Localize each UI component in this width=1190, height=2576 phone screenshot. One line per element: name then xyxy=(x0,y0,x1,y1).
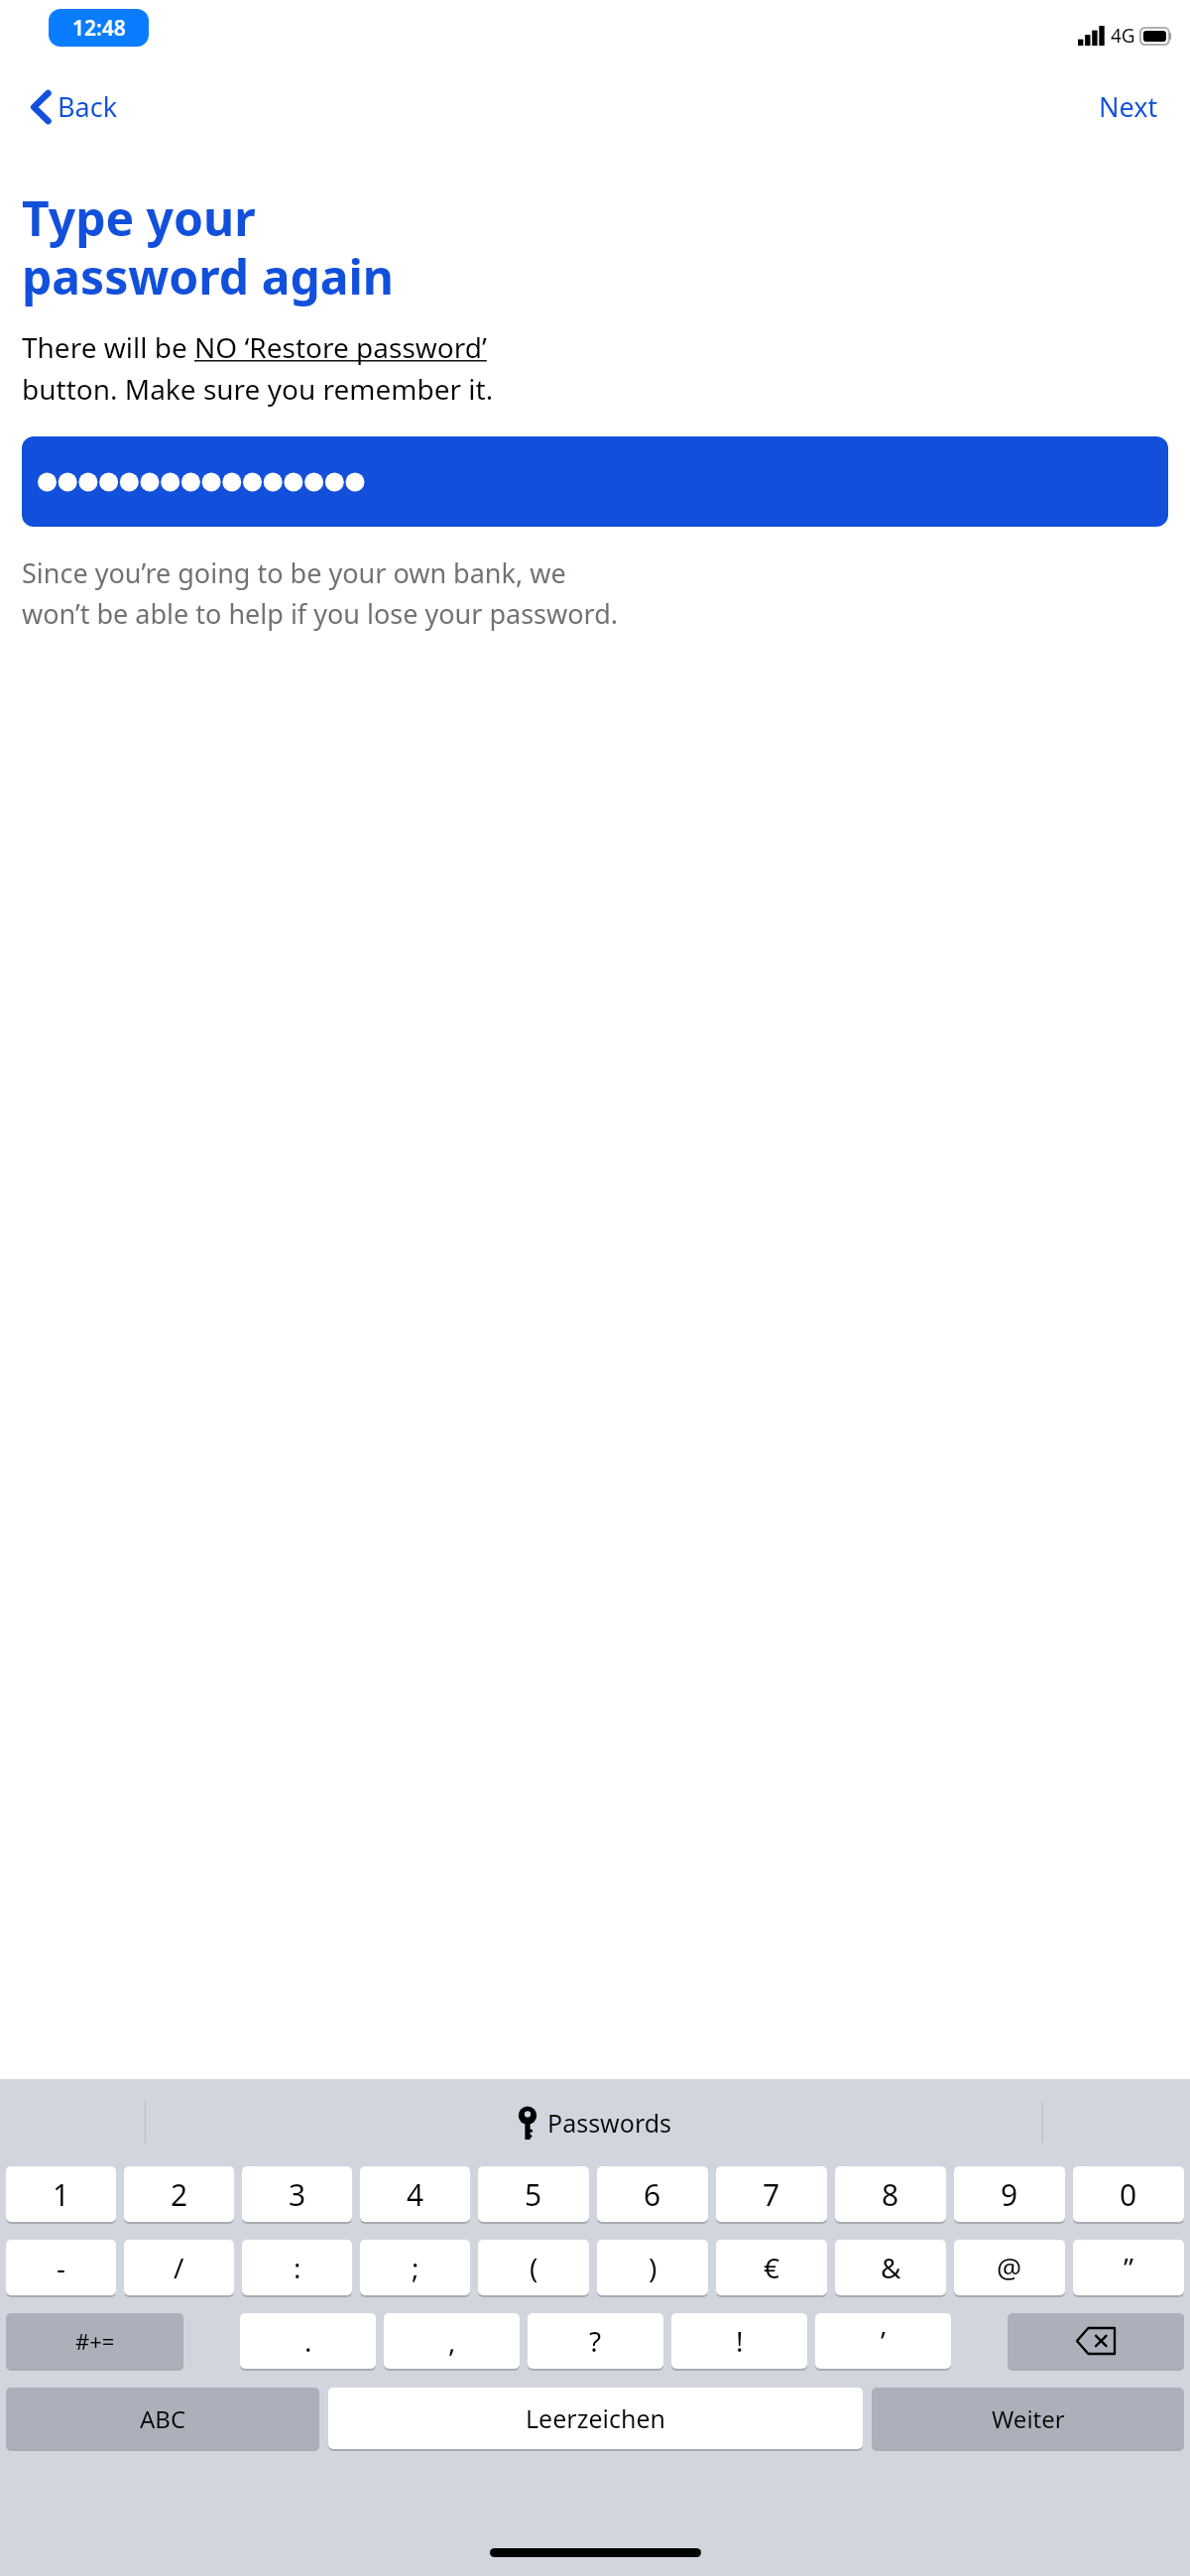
button[interactable]: @ xyxy=(954,2240,1065,2295)
button[interactable]: 4 xyxy=(360,2166,470,2222)
staticText: ” xyxy=(1124,2249,1134,2286)
button[interactable]: 6 xyxy=(597,2166,708,2222)
button[interactable]: ! xyxy=(671,2313,807,2369)
button[interactable]: 7 xyxy=(716,2166,827,2222)
button[interactable]: ; xyxy=(360,2240,470,2295)
staticText: 12:48 xyxy=(72,14,126,43)
staticText: ) xyxy=(649,2249,657,2286)
staticText: - xyxy=(57,2249,66,2286)
staticText: ( xyxy=(530,2249,538,2286)
button[interactable]: Next xyxy=(1091,82,1166,131)
button[interactable]: ABC xyxy=(6,2388,319,2449)
button[interactable]: 3 xyxy=(242,2166,352,2222)
button[interactable]: - xyxy=(6,2240,116,2295)
staticText: ’ xyxy=(881,2322,886,2360)
staticText: € xyxy=(764,2249,780,2286)
button[interactable]: 9 xyxy=(954,2166,1065,2222)
button[interactable]: Passwords xyxy=(518,2106,672,2140)
other: Backspace xyxy=(1008,2313,1184,2370)
button[interactable]: Weiter xyxy=(872,2388,1184,2449)
staticText: Next xyxy=(1099,88,1158,125)
button[interactable]: Leerzeichen xyxy=(328,2388,863,2449)
staticText: & xyxy=(881,2249,901,2286)
staticText: ? xyxy=(589,2322,602,2360)
staticText: Type your password again xyxy=(22,185,395,308)
button[interactable]: 2 xyxy=(124,2166,234,2222)
button[interactable]: ? xyxy=(528,2313,663,2369)
button[interactable] xyxy=(22,436,1168,527)
staticText: 2 xyxy=(171,2174,188,2215)
button[interactable]: ( xyxy=(478,2240,589,2295)
staticText: Passwords xyxy=(547,2106,672,2140)
staticText: @ xyxy=(997,2249,1022,2286)
button[interactable] xyxy=(1008,2313,1184,2369)
staticText: . xyxy=(304,2322,312,2360)
staticText: 0 xyxy=(1120,2174,1137,2215)
staticText: 7 xyxy=(763,2174,780,2215)
staticText: Since you’re going to be your own bank, … xyxy=(22,554,619,632)
button[interactable]: / xyxy=(124,2240,234,2295)
staticText: 6 xyxy=(644,2174,661,2215)
button[interactable]: ” xyxy=(1073,2240,1184,2295)
staticText: / xyxy=(174,2249,184,2286)
staticText: Weiter xyxy=(992,2402,1065,2435)
staticText: 8 xyxy=(882,2174,899,2215)
button[interactable]: 8 xyxy=(835,2166,946,2222)
button[interactable]: 1 xyxy=(6,2166,116,2222)
staticText: 4G xyxy=(1111,23,1135,49)
staticText: Leerzeichen xyxy=(526,2401,665,2435)
staticText: , xyxy=(448,2322,456,2360)
button[interactable]: 0 xyxy=(1073,2166,1184,2222)
staticText: 1 xyxy=(53,2174,70,2215)
button[interactable]: 5 xyxy=(478,2166,589,2222)
button[interactable]: ’ xyxy=(815,2313,951,2369)
button[interactable]: : xyxy=(242,2240,352,2295)
staticText: ; xyxy=(412,2249,419,2286)
staticText: ! xyxy=(736,2322,744,2360)
staticText: Back xyxy=(58,88,118,125)
button[interactable]: . xyxy=(240,2313,376,2369)
button[interactable]: #+= xyxy=(6,2313,183,2369)
button[interactable]: & xyxy=(835,2240,946,2295)
button[interactable]: , xyxy=(384,2313,520,2369)
button[interactable]: ) xyxy=(597,2240,708,2295)
button[interactable]: Back xyxy=(24,82,126,131)
staticText: 5 xyxy=(525,2174,542,2215)
staticText: #+= xyxy=(75,2326,115,2356)
staticText: 3 xyxy=(289,2174,306,2215)
staticText: : xyxy=(294,2249,301,2286)
staticText: 9 xyxy=(1001,2174,1018,2215)
staticText: 4 xyxy=(407,2174,424,2215)
button[interactable]: € xyxy=(716,2240,827,2295)
staticText: There will be NO ‘Restore password’ butt… xyxy=(22,328,494,408)
staticText: ABC xyxy=(140,2402,186,2435)
